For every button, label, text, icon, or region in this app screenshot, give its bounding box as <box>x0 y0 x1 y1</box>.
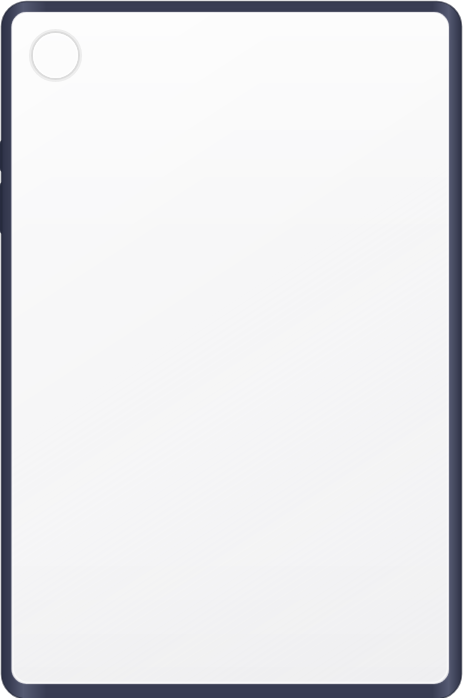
button[interactable]: Tablet clear case, navy bumper <box>0 0 465 698</box>
